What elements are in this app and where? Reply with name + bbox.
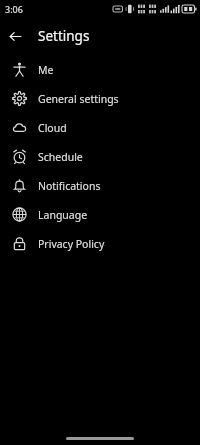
staticText: Schedule <box>38 150 83 164</box>
staticText: Settings <box>38 27 90 45</box>
button[interactable]: Back <box>4 25 26 47</box>
staticText: 3:06 <box>5 3 23 15</box>
staticText: Notifications <box>38 179 101 193</box>
button[interactable]: Cloud <box>0 113 200 142</box>
button[interactable]: Language <box>0 200 200 229</box>
button[interactable]: Me <box>0 55 200 84</box>
staticText: General settings <box>38 92 119 106</box>
staticText: Privacy Policy <box>38 237 105 251</box>
button[interactable]: Privacy Policy <box>0 229 200 258</box>
button[interactable]: General settings <box>0 84 200 113</box>
staticText: Cloud <box>38 121 67 135</box>
staticText: Me <box>38 63 54 77</box>
staticText: Language <box>38 208 88 222</box>
button[interactable]: Notifications <box>0 171 200 200</box>
button[interactable]: Schedule <box>0 142 200 171</box>
